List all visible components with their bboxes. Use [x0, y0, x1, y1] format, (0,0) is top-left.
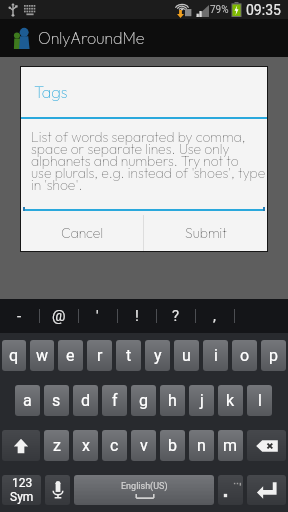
staticText: ? [172, 307, 180, 325]
staticText: OnlyAroundMe [38, 28, 145, 48]
staticText: p [269, 346, 278, 365]
button[interactable]: p [261, 340, 286, 371]
staticText: 123 [12, 476, 33, 490]
button[interactable]: l [247, 385, 272, 416]
button[interactable]: h [160, 385, 185, 416]
button[interactable]: Enter [247, 475, 286, 505]
staticText: 09:35 [246, 2, 281, 18]
staticText: Cancel [61, 224, 104, 242]
staticText: ! [135, 307, 139, 325]
button[interactable]: u [174, 340, 199, 371]
button[interactable]: v [131, 430, 156, 461]
button[interactable]: y [145, 340, 170, 371]
button[interactable]: a [15, 385, 40, 416]
staticText: x [82, 436, 90, 455]
button[interactable]: Shift [2, 430, 40, 461]
button[interactable]: c [102, 430, 127, 461]
button[interactable]: Period [218, 475, 243, 505]
button[interactable]: 123 [2, 475, 41, 505]
staticText: w [36, 346, 49, 365]
button[interactable]: o [232, 340, 257, 371]
staticText: v [140, 436, 148, 455]
staticText: - [17, 307, 22, 325]
button[interactable]: e [58, 340, 83, 371]
staticText: c [110, 436, 119, 455]
button[interactable]: ' [78, 299, 117, 333]
button[interactable]: d [73, 385, 98, 416]
button[interactable]: w [30, 340, 54, 371]
staticText: o [240, 346, 250, 365]
button[interactable]: - [0, 299, 39, 333]
staticText: n [197, 436, 206, 455]
button[interactable]: Voice input [45, 475, 70, 505]
button[interactable]: q [2, 340, 26, 371]
staticText: q [9, 346, 19, 365]
staticText: l [258, 391, 262, 410]
button[interactable]: x [73, 430, 98, 461]
button[interactable]: i [203, 340, 228, 371]
staticText: Sym [10, 490, 34, 504]
button[interactable]: g [131, 385, 156, 416]
staticText: s [52, 391, 61, 410]
staticText: ' [96, 307, 99, 325]
staticText: f [112, 391, 118, 410]
button[interactable]: r [87, 340, 112, 371]
staticText: i [214, 346, 218, 365]
button[interactable]: English(US) [74, 475, 214, 505]
staticText: r [97, 346, 103, 365]
staticText: Tags [34, 82, 68, 102]
staticText: b [168, 436, 177, 455]
staticText: a [23, 391, 32, 410]
staticText: List of words separated by comma, space … [31, 128, 266, 193]
staticText: @ [52, 307, 66, 325]
button[interactable]: f [102, 385, 127, 416]
staticText: z [53, 436, 61, 455]
staticText: English(US) [121, 481, 168, 492]
button[interactable]: Submit [144, 215, 267, 251]
button[interactable]: m [218, 430, 243, 461]
staticText: 79% [210, 4, 229, 16]
button[interactable]: z [44, 430, 69, 461]
staticText: g [139, 391, 148, 410]
staticText: k [226, 391, 235, 410]
button[interactable]: n [189, 430, 214, 461]
button[interactable]: Cancel [21, 215, 143, 251]
button[interactable]: s [44, 385, 69, 416]
staticText: m [223, 436, 238, 455]
staticText: j [200, 391, 204, 410]
button[interactable]: b [160, 430, 185, 461]
button[interactable]: Backspace [247, 430, 286, 461]
staticText: y [154, 346, 162, 365]
staticText: Submit [185, 224, 227, 242]
staticText: , [213, 307, 216, 325]
button[interactable]: @ [39, 299, 78, 333]
button[interactable]: k [218, 385, 243, 416]
button[interactable]: j [189, 385, 214, 416]
staticText: e [66, 346, 75, 365]
staticText: t [126, 346, 132, 365]
staticText: d [81, 391, 91, 410]
button[interactable]: t [116, 340, 141, 371]
button[interactable]: ? [156, 299, 195, 333]
staticText: h [168, 391, 177, 410]
staticText: u [182, 346, 191, 365]
button[interactable]: ! [117, 299, 156, 333]
button[interactable]: , [195, 299, 234, 333]
